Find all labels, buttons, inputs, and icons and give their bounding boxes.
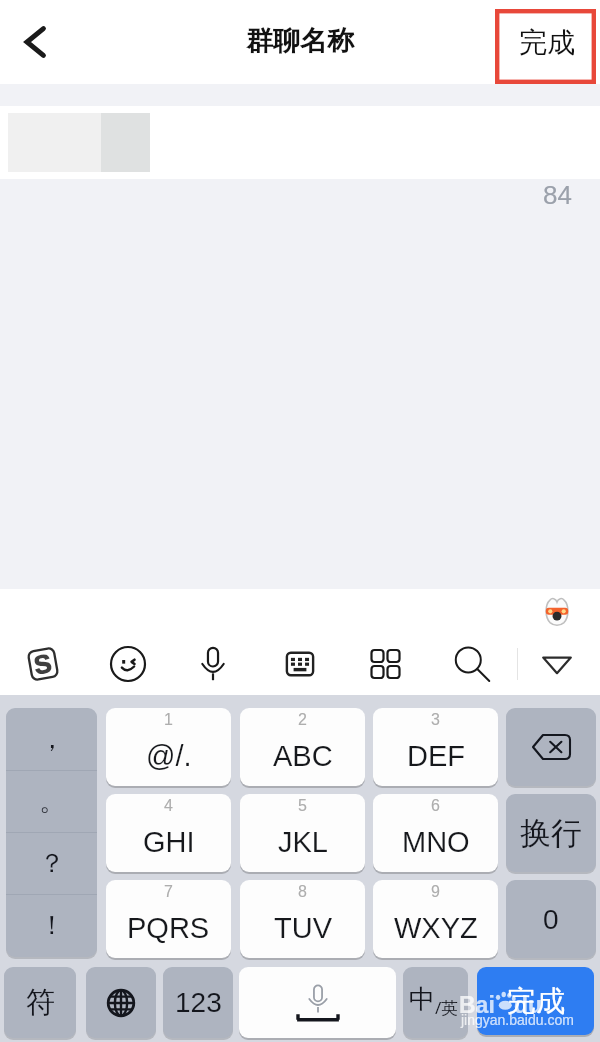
button[interactable]: 完成	[477, 967, 594, 1035]
button[interactable]: Emoji	[100, 633, 156, 695]
staticText: 换行	[520, 814, 582, 853]
staticText: /英	[435, 996, 459, 1019]
button[interactable]: 1	[106, 708, 231, 786]
staticText: 5	[298, 797, 307, 815]
button[interactable]: 2	[240, 708, 365, 786]
staticText: ，	[39, 723, 65, 756]
button[interactable]: Space	[239, 967, 396, 1038]
staticText: 0	[543, 904, 559, 935]
staticText: 84	[543, 180, 572, 209]
staticText: 6	[431, 797, 440, 815]
staticText: ABC	[273, 740, 333, 772]
button[interactable]: 0	[506, 880, 596, 958]
staticText: ！	[39, 909, 65, 942]
staticText: JKL	[278, 826, 328, 858]
button[interactable]: 。	[6, 770, 97, 832]
button[interactable]: ，	[6, 708, 97, 770]
button[interactable]: 5	[240, 794, 365, 872]
staticText: S	[31, 648, 54, 679]
button[interactable]: More functions	[357, 633, 413, 695]
button[interactable]: 4	[106, 794, 231, 872]
button[interactable]: Back	[0, 0, 70, 84]
button[interactable]: Sogou input	[15, 633, 71, 695]
other: Space	[289, 983, 347, 1023]
staticText: MNO	[402, 826, 470, 858]
staticText: @/.	[146, 740, 192, 772]
staticText: Bai	[459, 992, 495, 1018]
button[interactable]: 3	[373, 708, 498, 786]
staticText: 7	[164, 883, 173, 901]
button[interactable]: Voice input	[185, 633, 241, 695]
staticText: 符	[26, 984, 55, 1021]
button[interactable]: Switch input language	[86, 967, 156, 1038]
button[interactable]: 7	[106, 880, 231, 958]
button[interactable]: 中	[403, 967, 468, 1038]
button[interactable]: Sogou assistant	[541, 595, 573, 627]
staticText: 8	[298, 883, 307, 901]
button[interactable]: 8	[240, 880, 365, 958]
button[interactable]: ！	[6, 894, 97, 956]
staticText: 9	[431, 883, 440, 901]
button[interactable]: 6	[373, 794, 498, 872]
staticText: du	[514, 992, 543, 1018]
button[interactable]: 123	[163, 967, 233, 1038]
other: Switch input language	[105, 987, 137, 1019]
staticText: 完成	[519, 25, 575, 60]
staticText: DEF	[407, 740, 465, 772]
staticText: 完成	[507, 983, 565, 1020]
staticText: WXYZ	[394, 912, 478, 944]
staticText: PQRS	[127, 912, 210, 944]
staticText: TUV	[274, 912, 332, 944]
button[interactable]: 9	[373, 880, 498, 958]
button[interactable]: 换行	[506, 794, 596, 872]
button[interactable]: ？	[6, 832, 97, 894]
staticText: 中	[409, 983, 435, 1016]
staticText: ？	[39, 847, 65, 880]
staticText: 3	[431, 711, 440, 729]
staticText: jingyan.baidu.com	[461, 1012, 574, 1028]
staticText: 123	[175, 987, 222, 1018]
button[interactable]: Backspace	[506, 708, 596, 786]
staticText: 1	[164, 711, 173, 729]
button[interactable]: Keyboard layout	[272, 633, 328, 695]
other: Backspace	[531, 734, 571, 760]
button[interactable]: Search	[443, 633, 499, 695]
staticText: 群聊名称	[246, 24, 354, 58]
staticText: GHI	[143, 826, 195, 858]
button[interactable]: 完成	[499, 6, 594, 78]
button[interactable]: 符	[4, 967, 76, 1038]
staticText: 。	[39, 785, 65, 818]
staticText: 2	[298, 711, 307, 729]
button[interactable]: Hide keyboard	[529, 633, 585, 695]
staticText: 4	[164, 797, 173, 815]
